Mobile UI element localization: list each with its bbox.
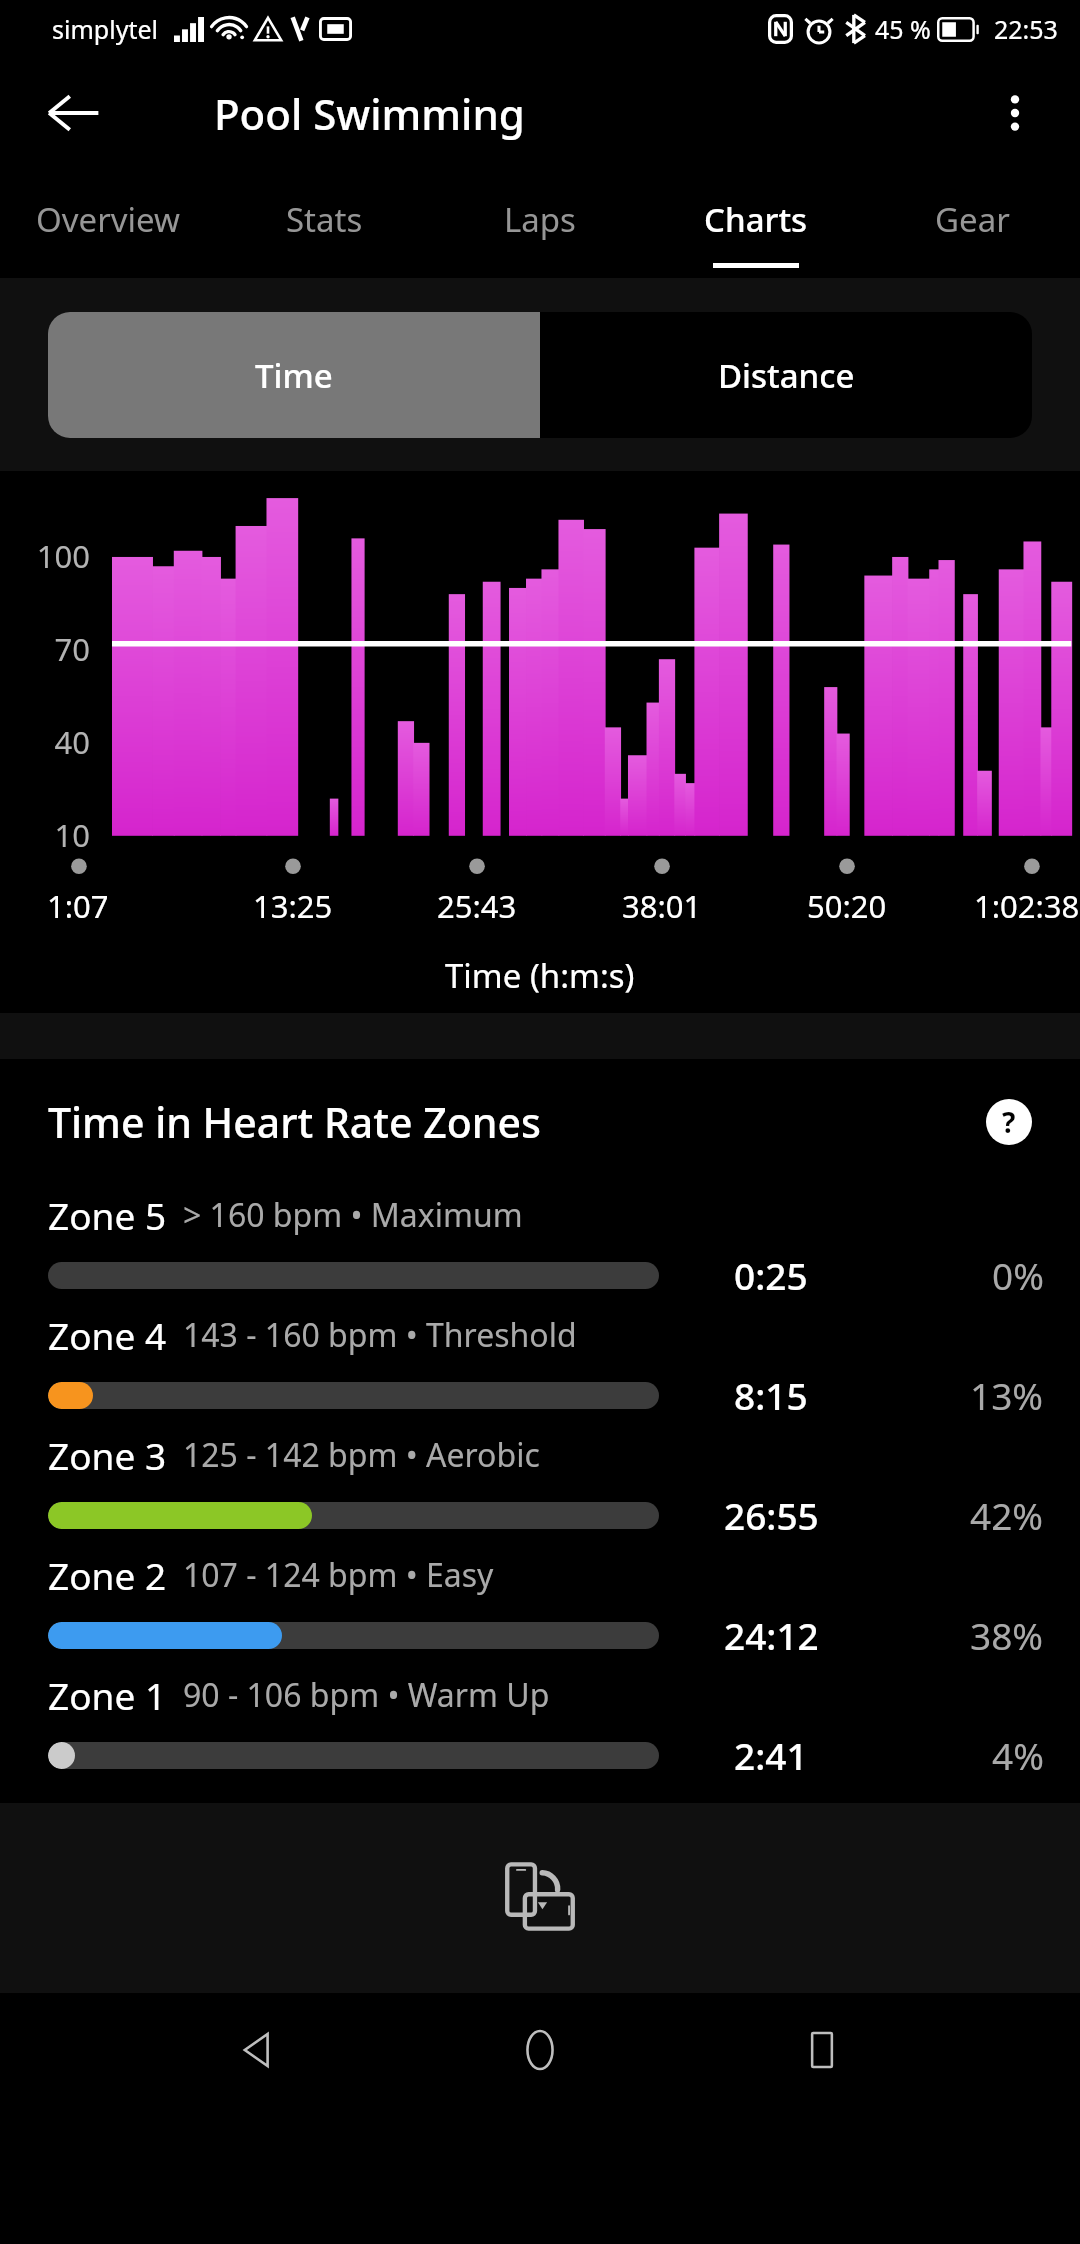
staticText: Overview (36, 197, 180, 242)
staticText: 50:20 (807, 885, 887, 927)
staticText: Stats (286, 197, 363, 242)
button[interactable]: Stats (216, 168, 432, 278)
staticText: 1:07 (47, 885, 109, 927)
staticText: 4% (992, 1730, 1044, 1780)
staticText: ? (1002, 1103, 1016, 1141)
staticText: 1:02:38 (974, 885, 1080, 927)
staticText: 125 - 142 bpm • Aerobic (183, 1433, 540, 1477)
staticText: Time in Heart Rate Zones (48, 1094, 541, 1150)
staticText: 70 (0, 628, 90, 670)
button[interactable]: Laps (432, 168, 648, 278)
staticText: 24:12 (724, 1610, 819, 1660)
button[interactable]: Gear (864, 168, 1080, 278)
staticText: Zone 4 (48, 1310, 167, 1360)
staticText: Zone 3 (48, 1430, 167, 1480)
button[interactable]: Charts (648, 168, 864, 278)
staticText: 45 % (875, 12, 931, 46)
staticText: simplytel (52, 12, 158, 46)
staticText: 13:25 (253, 885, 333, 927)
staticText: Gear (935, 197, 1010, 242)
staticText: 26:55 (724, 1490, 819, 1540)
staticText: Time (255, 353, 333, 398)
button[interactable]: Time (48, 312, 540, 438)
staticText: 143 - 160 bpm • Threshold (183, 1313, 577, 1357)
staticText: Charts (704, 197, 808, 242)
staticText: 0% (992, 1250, 1044, 1300)
staticText: 40 (0, 721, 90, 763)
staticText: > 160 bpm • Maximum (183, 1193, 523, 1237)
staticText: 13% (970, 1370, 1044, 1420)
button[interactable]: Back (30, 70, 116, 156)
button[interactable]: Back (213, 2005, 303, 2095)
staticText: 42% (970, 1490, 1044, 1540)
staticText: 100 (0, 535, 90, 577)
staticText: 2:41 (734, 1730, 808, 1780)
staticText: 25:43 (437, 885, 517, 927)
button[interactable]: Zone 3 (0, 1425, 1080, 1545)
staticText: 10 (0, 814, 90, 856)
button[interactable]: Zone 2 (0, 1545, 1080, 1665)
button[interactable]: Zone 4 (0, 1305, 1080, 1425)
staticText: 38:01 (622, 885, 702, 927)
button[interactable]: Help (974, 1087, 1044, 1157)
button[interactable]: Rotate screen (480, 1838, 600, 1958)
button[interactable]: Home (495, 2005, 585, 2095)
staticText: Pool Swimming (214, 85, 525, 142)
staticText: 107 - 124 bpm • Easy (183, 1553, 494, 1597)
staticText: Laps (504, 197, 576, 242)
staticText: Time (h:m:s) (445, 953, 635, 998)
button[interactable]: Zone 5 (0, 1185, 1080, 1305)
staticText: Zone 1 (48, 1670, 167, 1720)
button[interactable]: Recents (777, 2005, 867, 2095)
staticText: Zone 2 (48, 1550, 167, 1600)
staticText: 8:15 (734, 1370, 808, 1420)
staticText: 0:25 (734, 1250, 808, 1300)
button[interactable]: Overview (0, 168, 216, 278)
staticText: 38% (970, 1610, 1044, 1660)
button[interactable]: Distance (540, 312, 1032, 438)
staticText: Distance (718, 353, 855, 398)
staticText: 22:53 (994, 12, 1058, 46)
staticText: 90 - 106 bpm • Warm Up (183, 1673, 550, 1717)
staticText: Zone 5 (48, 1190, 167, 1240)
button[interactable]: More options (972, 70, 1058, 156)
button[interactable]: Zone 1 (0, 1665, 1080, 1785)
